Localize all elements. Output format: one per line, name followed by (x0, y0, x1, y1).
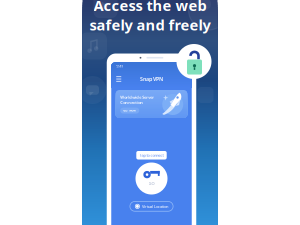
staticText: Connection (120, 100, 143, 105)
staticText: safely and freely (89, 15, 210, 34)
staticText: Access the web (93, 0, 206, 15)
staticText: Snap VPN (140, 75, 163, 83)
button[interactable]: Virtual Location (130, 201, 173, 211)
staticText: 9:41 (116, 63, 123, 69)
button[interactable]: Menu (114, 74, 123, 84)
staticText: Tap to connect (139, 153, 163, 158)
button[interactable]: GO (135, 162, 167, 194)
staticText: Virtual Location (142, 204, 168, 209)
staticText: GO (148, 181, 154, 186)
button[interactable]: Worldwide Server (116, 90, 187, 118)
staticText: GET NOW (123, 109, 136, 112)
staticText: Worldwide Server (120, 94, 154, 100)
